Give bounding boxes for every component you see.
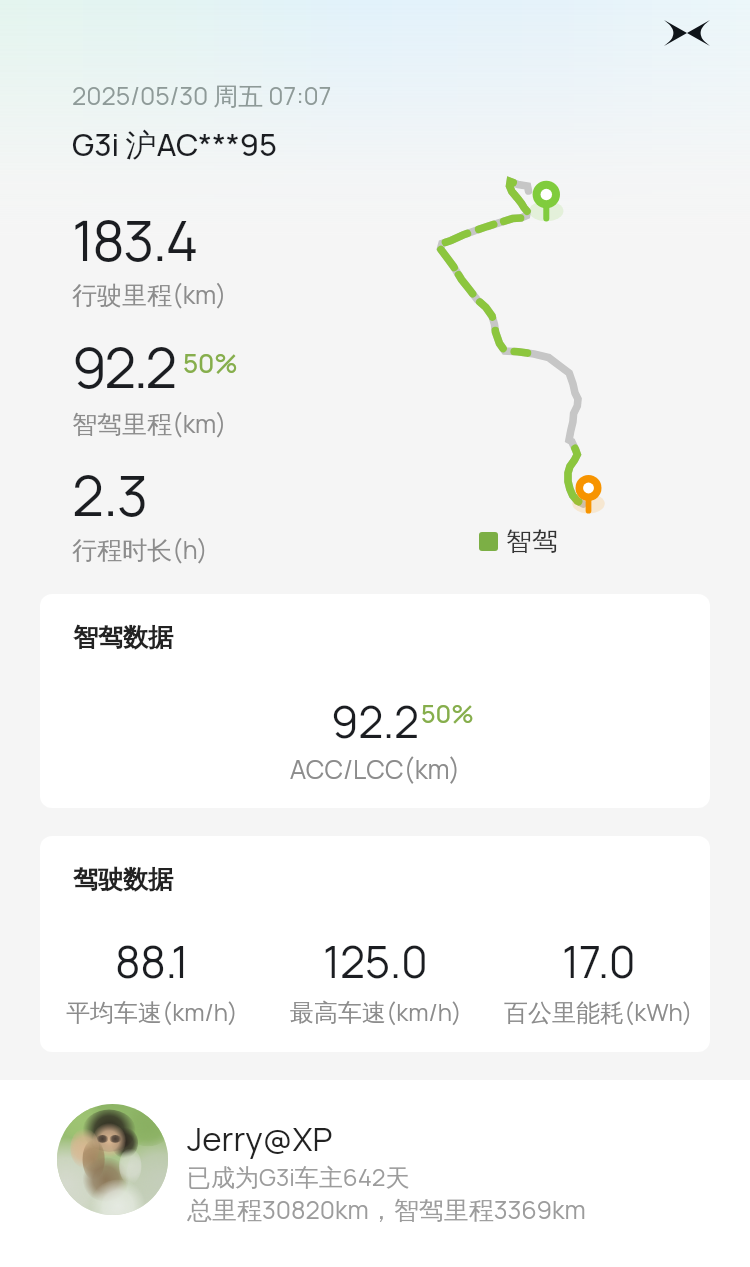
staticText: 17.0 — [562, 931, 636, 991]
staticText: 92.2 — [72, 328, 175, 404]
staticText: 平均车速(km/h) — [66, 995, 238, 1028]
staticText: 50% — [421, 696, 474, 730]
staticText: 行驶里程(km) — [72, 277, 227, 311]
staticText: G3i 沪AC***95 — [72, 123, 278, 165]
button[interactable]: 驾驶数据 — [40, 836, 710, 1052]
staticText: 总里程30820km，智驾里程3369km — [187, 1192, 586, 1226]
staticText: 92.2 — [40, 691, 710, 751]
button[interactable]: XPeng logo — [664, 20, 710, 46]
button[interactable]: Jerry@XP — [57, 1104, 586, 1215]
staticText: 88.1 — [115, 931, 189, 991]
staticText: 百公里能耗(kWh) — [504, 995, 693, 1028]
staticText: 已成为G3i车主642天 — [187, 1160, 410, 1193]
button[interactable]: 智驾数据 — [40, 594, 710, 808]
staticText: 行程时长(h) — [72, 532, 208, 566]
staticText: 2025/05/30 周五 07:07 — [72, 78, 332, 112]
staticText: 智驾 — [506, 525, 558, 558]
staticText: 2.3 — [72, 456, 148, 532]
staticText: Jerry@XP — [187, 1116, 333, 1161]
staticText: 驾驶数据 — [73, 864, 173, 895]
staticText: 智驾里程(km) — [72, 406, 227, 440]
staticText: 125.0 — [323, 931, 428, 991]
staticText: 最高车速(km/h) — [290, 995, 462, 1028]
staticText: 50% — [183, 345, 238, 381]
staticText: 智驾数据 — [73, 622, 173, 653]
staticText: 183.4 — [72, 201, 198, 277]
staticText: ACC/LCC(km) — [40, 751, 710, 787]
